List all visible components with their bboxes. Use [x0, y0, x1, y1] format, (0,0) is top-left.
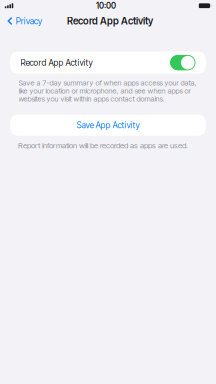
staticText: Save a 7-day summary of when apps access… — [18, 78, 196, 103]
staticText: Record App Activity — [20, 58, 92, 68]
staticText: Privacy — [16, 16, 42, 26]
button[interactable]: Record App Activity — [10, 51, 206, 74]
staticText: Record App Activity — [67, 15, 153, 27]
staticText: Report information will be recorded as a… — [18, 141, 188, 150]
button[interactable]: Save App Activity — [10, 115, 206, 136]
staticText: Save App Activity — [76, 120, 139, 130]
button[interactable]: Privacy — [0, 13, 46, 29]
staticText: 10:00 — [96, 1, 116, 11]
